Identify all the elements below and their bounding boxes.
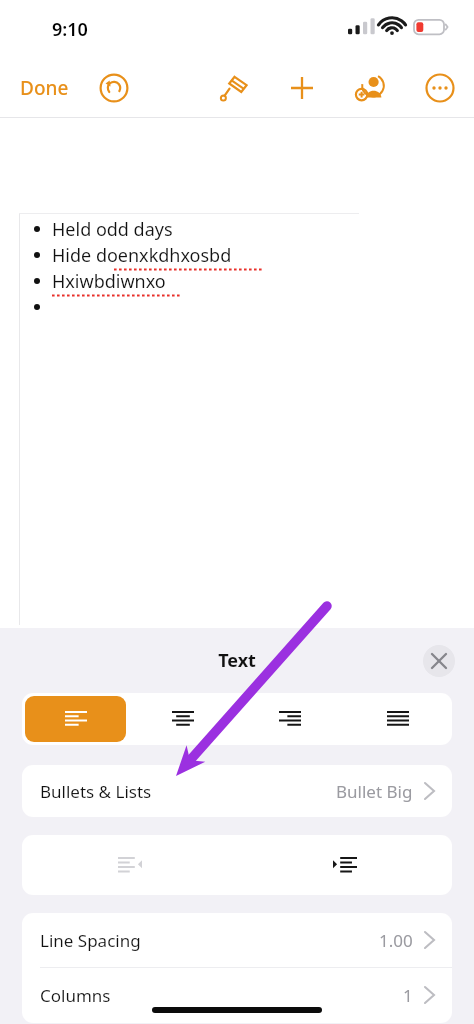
button[interactable]: Align left <box>25 696 126 742</box>
button[interactable]: Columns <box>22 968 452 1022</box>
staticText: Text <box>218 648 256 673</box>
button[interactable]: Add <box>280 66 324 110</box>
staticText: Done <box>20 75 69 101</box>
staticText: Bullets & Lists <box>40 780 152 803</box>
button[interactable]: Add people <box>348 66 392 110</box>
staticText: Line Spacing <box>40 929 141 952</box>
button[interactable]: Format brush <box>212 66 256 110</box>
staticText: Columns <box>40 984 111 1007</box>
button[interactable]: Align center <box>132 696 233 742</box>
button[interactable]: Justify <box>347 696 449 742</box>
button[interactable]: Decrease indent <box>22 835 237 895</box>
staticText: Hide doenxkdhxosbd <box>52 243 232 268</box>
staticText: 1.00 <box>379 929 413 952</box>
button[interactable]: Close <box>423 645 455 677</box>
staticText: Hxiwbdiwnxo <box>52 269 166 294</box>
button[interactable]: Increase indent <box>237 835 452 895</box>
button[interactable]: Undo <box>92 66 136 110</box>
staticText: 1 <box>403 984 413 1007</box>
button[interactable]: Done <box>12 69 77 107</box>
staticText: Held odd days <box>52 217 173 242</box>
button[interactable]: Align right <box>239 696 341 742</box>
button[interactable]: Line Spacing <box>22 913 452 967</box>
staticText: 9:10 <box>52 17 88 42</box>
staticText: Bullet Big <box>336 780 413 803</box>
button[interactable]: Bullets & Lists <box>22 765 452 817</box>
button[interactable]: More options <box>418 66 462 110</box>
